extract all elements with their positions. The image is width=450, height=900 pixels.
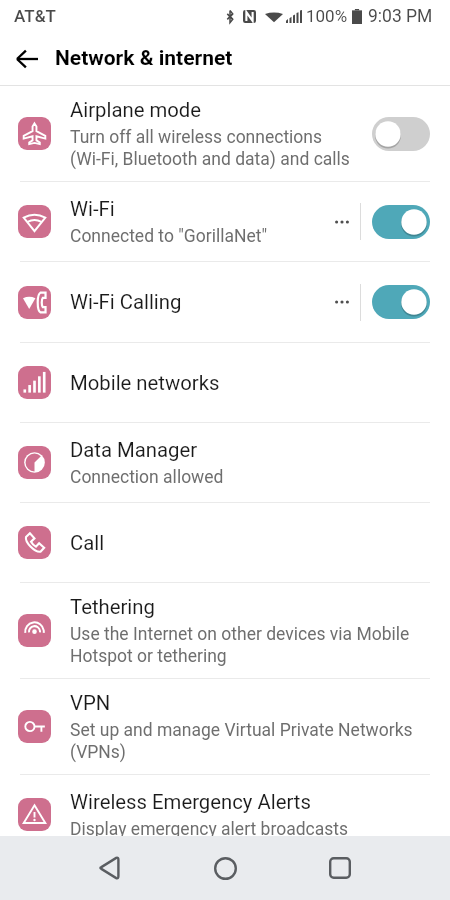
button[interactable]: Call (0, 503, 450, 582)
staticText: Call (70, 531, 105, 555)
staticText: AT&T (14, 6, 56, 26)
staticText: Turn off all wireless connections (Wi-Fi… (70, 126, 350, 170)
button[interactable]: VPN (0, 679, 450, 774)
staticText: Wi-Fi Calling (70, 290, 182, 314)
button[interactable]: Turn off (372, 200, 430, 244)
button[interactable]: More options (328, 200, 360, 244)
button[interactable]: Turn off (372, 280, 430, 324)
button[interactable]: Wireless Emergency Alerts (0, 775, 450, 836)
button[interactable]: Turn on (372, 112, 430, 156)
staticText: Connection allowed (70, 466, 224, 488)
staticText: 9:03 PM (368, 6, 433, 27)
staticText: Wi-Fi (70, 197, 115, 221)
staticText: Set up and manage Virtual Private Networ… (70, 719, 413, 763)
button[interactable]: Home (196, 839, 254, 897)
staticText: Tethering (70, 595, 155, 619)
staticText: Network & internet (55, 46, 233, 71)
button[interactable]: Tethering (0, 583, 450, 678)
staticText: 100% (306, 6, 348, 26)
button[interactable]: Back (80, 839, 138, 897)
button[interactable]: Airplane mode (0, 86, 450, 181)
staticText: Use the Internet on other devices via Mo… (70, 623, 410, 667)
staticText: Mobile networks (70, 371, 220, 395)
staticText: Data Manager (70, 438, 198, 462)
button[interactable]: Recents (311, 839, 369, 897)
button[interactable]: Wi-Fi Calling (0, 262, 450, 342)
staticText: Airplane mode (70, 98, 202, 122)
button[interactable]: Wi-Fi (0, 182, 450, 261)
staticText: Wireless Emergency Alerts (70, 790, 311, 814)
button[interactable]: Back (0, 32, 55, 85)
staticText: Connected to "GorillaNet" (70, 225, 268, 247)
button[interactable]: Mobile networks (0, 343, 450, 422)
button[interactable]: Data Manager (0, 423, 450, 502)
staticText: VPN (70, 691, 111, 715)
staticText: Display emergency alert broadcasts (70, 818, 348, 836)
button[interactable]: More options (328, 280, 360, 324)
